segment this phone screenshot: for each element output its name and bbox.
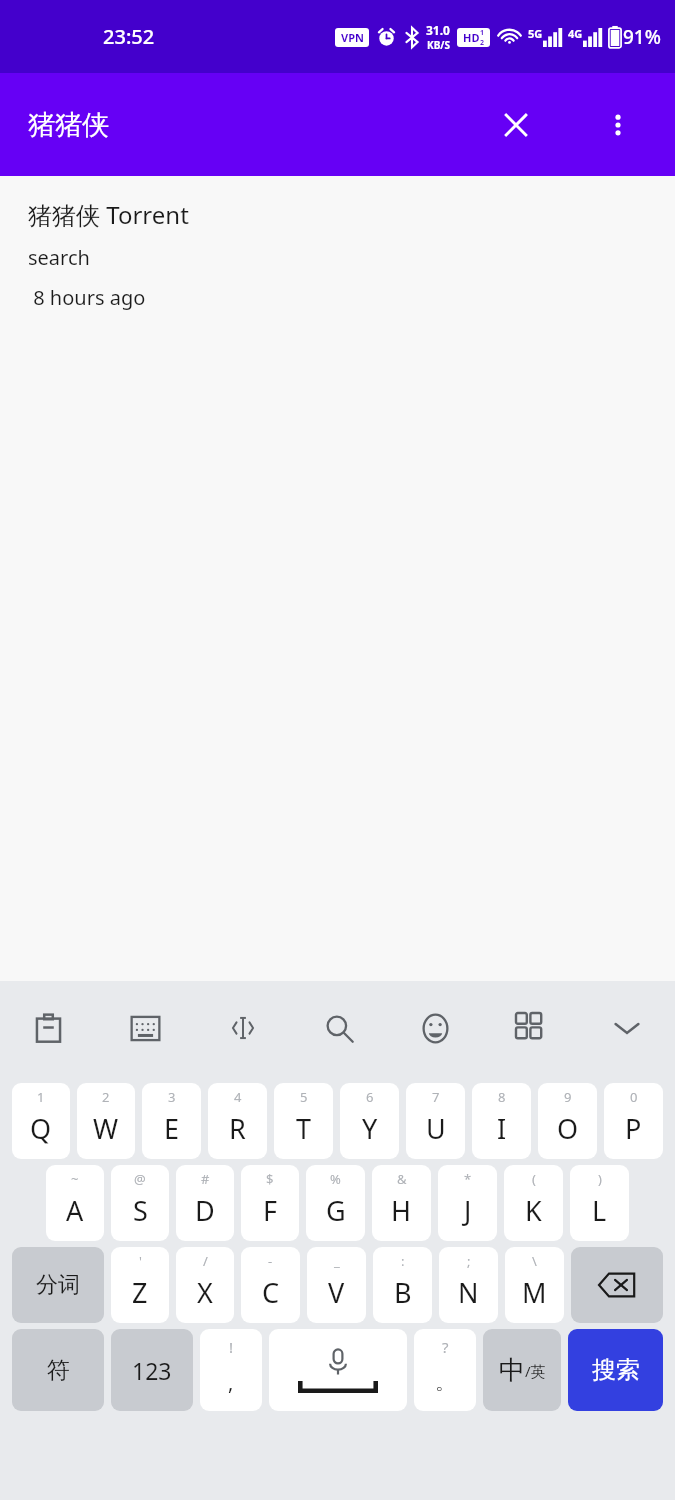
button[interactable]: (	[504, 1165, 563, 1241]
button[interactable]: ~	[46, 1165, 104, 1241]
staticText: 31.0	[426, 22, 450, 38]
staticText: I	[497, 1110, 507, 1147]
button[interactable]: 0	[604, 1083, 663, 1159]
staticText: F	[263, 1192, 278, 1229]
staticText: ?	[442, 1337, 449, 1357]
button[interactable]: 分词	[12, 1247, 104, 1323]
staticText: Z	[132, 1274, 148, 1311]
staticText: 2	[480, 38, 485, 47]
button[interactable]: *	[438, 1165, 497, 1241]
staticText: '	[139, 1252, 142, 1270]
button[interactable]: 符	[12, 1329, 104, 1411]
staticText: )	[598, 1170, 602, 1188]
button[interactable]: !	[200, 1329, 262, 1411]
button[interactable]: _	[307, 1247, 366, 1323]
staticText: K	[525, 1192, 542, 1229]
staticText: 1	[37, 1088, 45, 1106]
button[interactable]: %	[306, 1165, 365, 1241]
staticText: 猪猪侠	[28, 108, 109, 142]
button[interactable]: 123	[111, 1329, 193, 1411]
staticText: ~	[71, 1170, 79, 1188]
staticText: &	[397, 1170, 407, 1188]
button[interactable]: 7	[406, 1083, 465, 1159]
staticText: 搜索	[592, 1355, 640, 1385]
button[interactable]: Cursor move	[194, 981, 291, 1075]
staticText: G	[326, 1192, 346, 1229]
button[interactable]: @	[111, 1165, 169, 1241]
button[interactable]: Apps	[483, 981, 579, 1075]
button[interactable]: -	[241, 1247, 300, 1323]
staticText: /英	[525, 1361, 546, 1381]
staticText: U	[426, 1110, 446, 1147]
button[interactable]: ;	[439, 1247, 498, 1323]
button[interactable]: Backspace	[571, 1247, 663, 1323]
staticText: ,	[228, 1369, 234, 1396]
staticText: 91%	[623, 24, 661, 50]
staticText: -	[268, 1252, 273, 1270]
staticText: 5G	[528, 26, 543, 41]
staticText: 符	[47, 1356, 70, 1385]
staticText: E	[164, 1110, 180, 1147]
button[interactable]: Search	[291, 981, 387, 1075]
button[interactable]: Keyboard settings	[97, 981, 194, 1075]
staticText: D	[195, 1192, 215, 1229]
staticText: Q	[30, 1110, 52, 1147]
button[interactable]: \	[505, 1247, 564, 1323]
button[interactable]: 猪猪侠 Torrent	[0, 176, 675, 981]
staticText: S	[133, 1192, 148, 1229]
staticText: M	[522, 1274, 547, 1311]
button[interactable]: /	[176, 1247, 234, 1323]
button[interactable]: Emoji	[387, 981, 483, 1075]
staticText: 猪猪侠 Torrent	[28, 198, 189, 231]
button[interactable]: More options	[590, 97, 646, 153]
button[interactable]: 3	[142, 1083, 201, 1159]
staticText: H	[391, 1192, 412, 1229]
button[interactable]: 1	[12, 1083, 70, 1159]
button[interactable]: Close	[488, 97, 544, 153]
staticText: @	[134, 1170, 146, 1188]
button[interactable]: Clipboard	[0, 981, 97, 1075]
button[interactable]: $	[241, 1165, 299, 1241]
staticText: (	[532, 1170, 536, 1188]
staticText: 3	[168, 1088, 176, 1106]
staticText: A	[66, 1192, 84, 1229]
button[interactable]: 5	[274, 1083, 333, 1159]
staticText: HD	[463, 30, 480, 45]
button[interactable]: &	[372, 1165, 431, 1241]
button[interactable]: 中	[483, 1329, 561, 1411]
button[interactable]: 8	[472, 1083, 531, 1159]
button[interactable]: :	[373, 1247, 432, 1323]
staticText: 1	[480, 28, 485, 38]
staticText: $	[266, 1170, 274, 1188]
staticText: :	[401, 1252, 405, 1270]
staticText: 分词	[36, 1271, 80, 1299]
staticText: 8	[498, 1088, 506, 1106]
staticText: N	[458, 1274, 479, 1311]
button[interactable]: #	[176, 1165, 234, 1241]
button[interactable]: Space, voice input	[269, 1329, 407, 1411]
staticText: 。	[435, 1370, 455, 1395]
staticText: T	[296, 1110, 312, 1147]
button[interactable]: 2	[77, 1083, 135, 1159]
staticText: X	[197, 1274, 213, 1311]
staticText: 2	[102, 1088, 110, 1106]
staticText: B	[394, 1274, 412, 1311]
staticText: %	[330, 1170, 341, 1188]
staticText: 0	[630, 1088, 638, 1106]
staticText: 中	[499, 1354, 525, 1387]
staticText: R	[229, 1110, 246, 1147]
staticText: J	[464, 1192, 472, 1229]
staticText: L	[592, 1192, 607, 1229]
button[interactable]: )	[570, 1165, 629, 1241]
button[interactable]: 搜索	[568, 1329, 663, 1411]
staticText: V	[328, 1274, 345, 1311]
button[interactable]: 9	[538, 1083, 597, 1159]
staticText: 8 hours ago	[28, 284, 146, 311]
button[interactable]: 4	[208, 1083, 267, 1159]
button[interactable]: 6	[340, 1083, 399, 1159]
button[interactable]: ?	[414, 1329, 476, 1411]
button[interactable]: '	[111, 1247, 169, 1323]
staticText: _	[334, 1252, 340, 1270]
staticText: 4G	[568, 26, 583, 41]
button[interactable]: Hide keyboard	[579, 981, 675, 1075]
